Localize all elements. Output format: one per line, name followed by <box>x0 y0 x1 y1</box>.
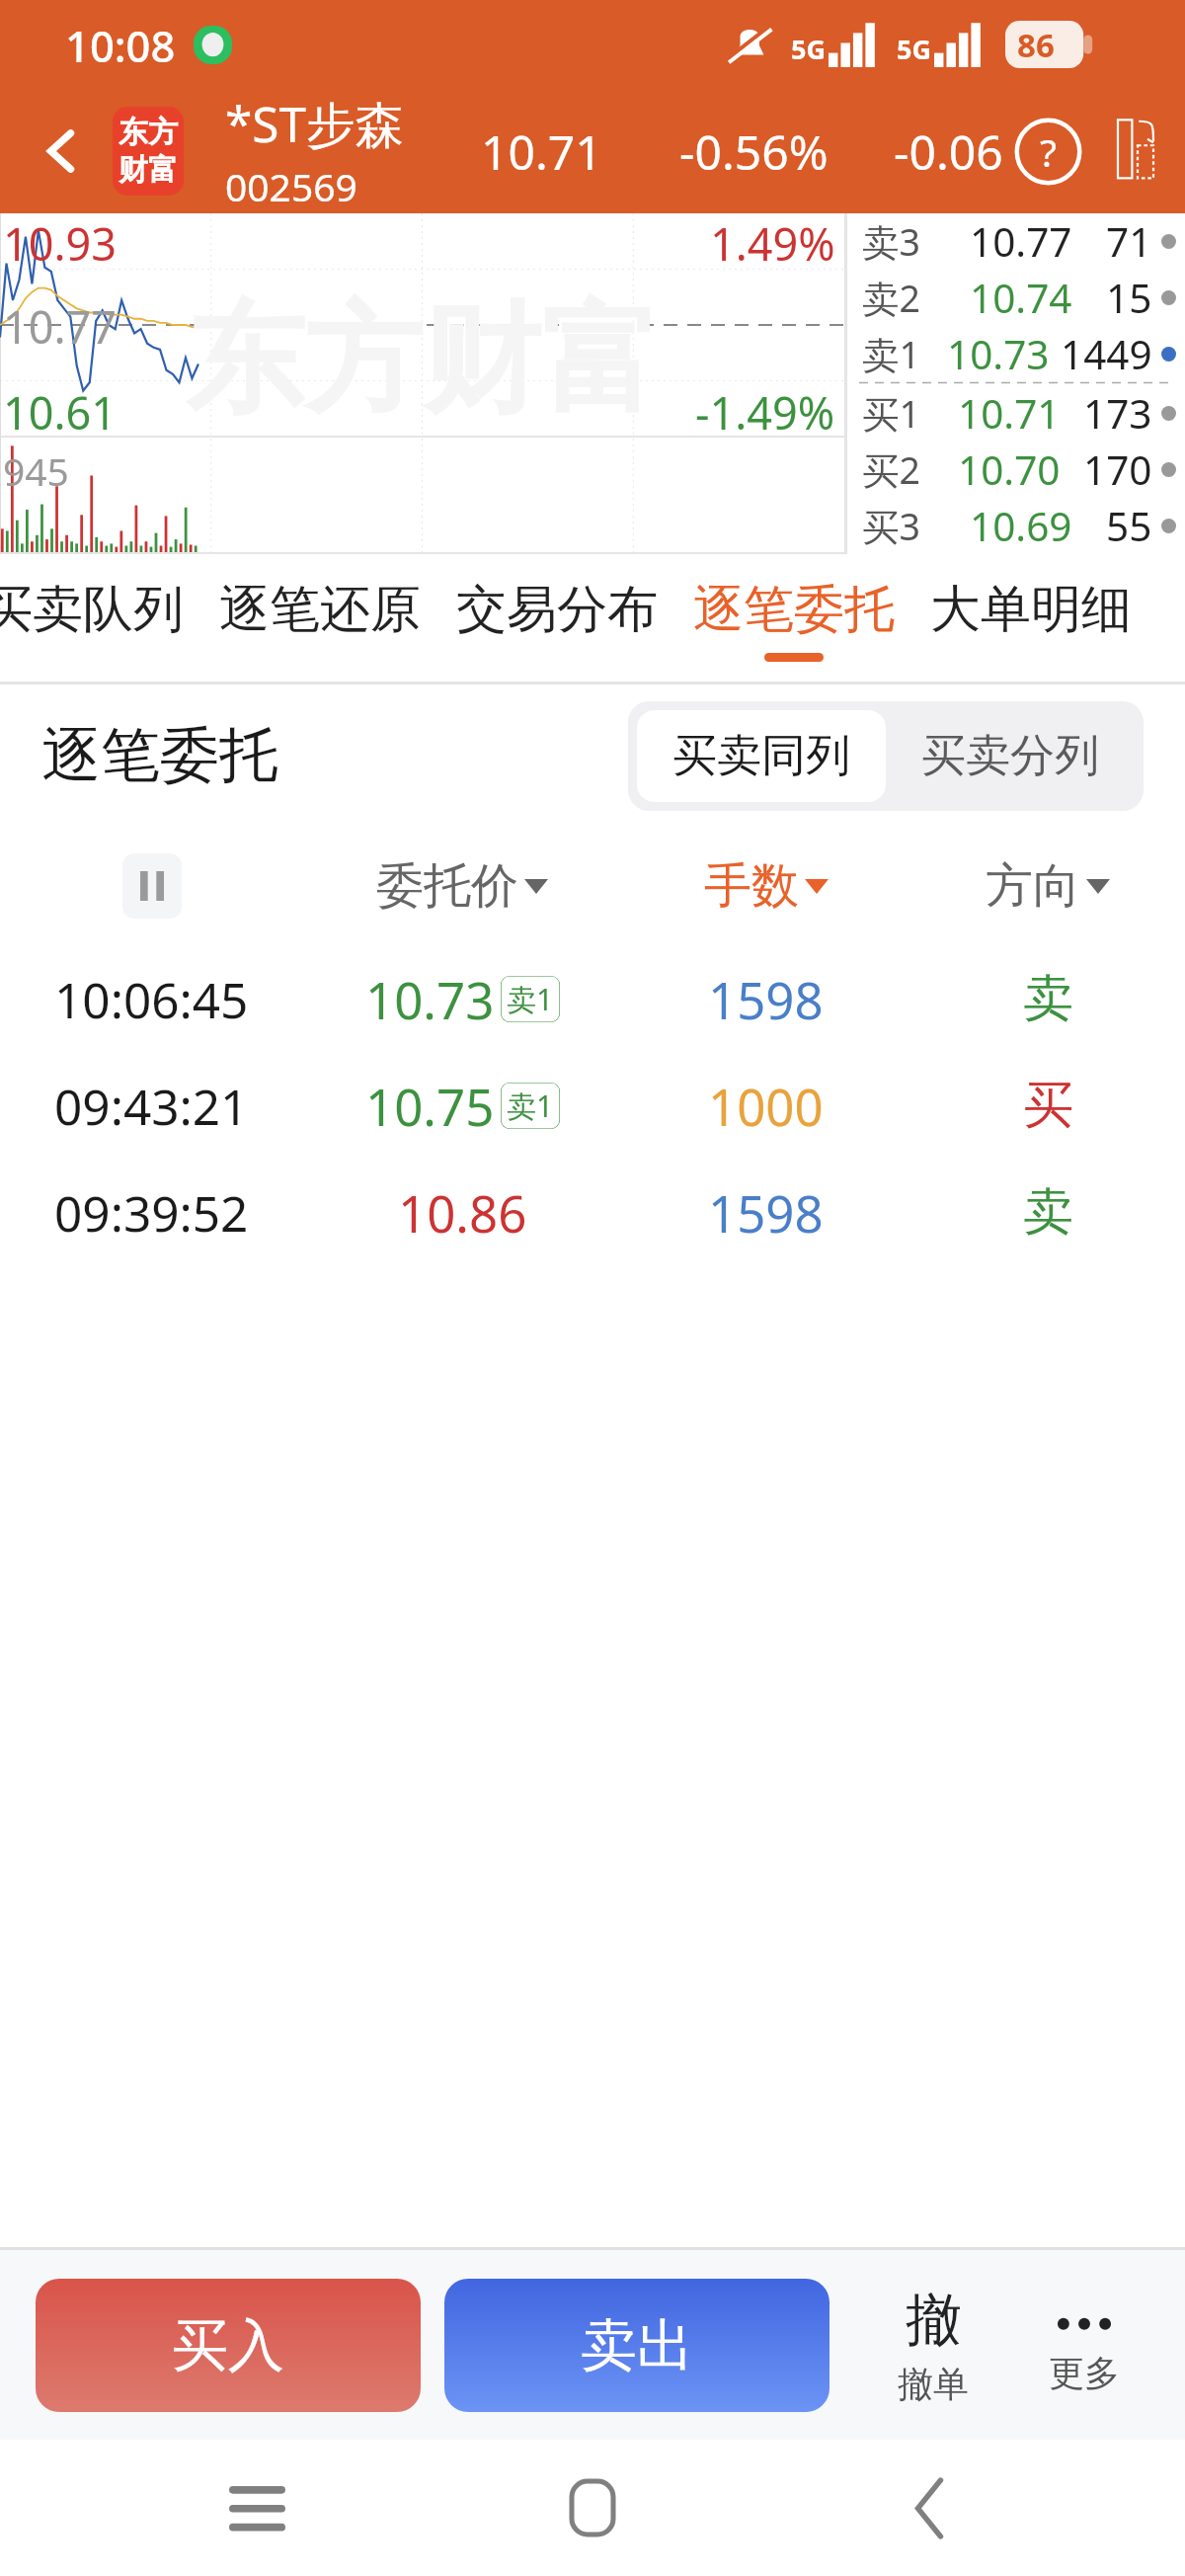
staticText: 10.75 <box>365 1072 495 1140</box>
staticText: 10:08 <box>65 16 176 74</box>
staticText: 买卖队列 <box>0 578 184 641</box>
staticText: 更多 <box>1049 2351 1120 2395</box>
button[interactable]: 逐笔委托 <box>675 554 912 684</box>
button[interactable]: 卖3 <box>847 213 1185 270</box>
button[interactable]: 卖出 <box>444 2279 829 2412</box>
staticText: 东方 <box>118 114 178 151</box>
button[interactable]: 更多 <box>1007 2250 1161 2440</box>
button[interactable]: 手数 <box>621 827 910 945</box>
staticText: 撤 <box>906 2285 962 2356</box>
staticText: 5G <box>791 31 826 67</box>
staticText: 买卖分列 <box>921 728 1099 784</box>
staticText: 86 <box>1017 23 1055 67</box>
button[interactable]: 方向 <box>910 827 1185 945</box>
staticText: 东方财富 <box>186 285 660 435</box>
staticText: 10.77 <box>970 214 1072 269</box>
button[interactable]: 买入 <box>36 2279 421 2412</box>
staticText: 卖1 <box>862 329 920 379</box>
button[interactable]: 买卖分列 <box>886 710 1135 802</box>
staticText: 1449 <box>1061 327 1152 381</box>
staticText: -1.49% <box>695 382 835 443</box>
staticText: -0.56% <box>679 120 829 184</box>
button[interactable]: 大单明细 <box>912 554 1149 684</box>
staticText: 173 <box>1083 386 1152 441</box>
button[interactable]: Back <box>12 101 113 201</box>
staticText: 10.73 <box>947 327 1050 381</box>
staticText: 10.77 <box>3 296 118 357</box>
staticText: 财富 <box>118 151 178 189</box>
staticText: 逐笔还原 <box>219 578 421 641</box>
button[interactable]: Back <box>849 2440 1009 2576</box>
staticText: 10.69 <box>970 499 1072 553</box>
button[interactable]: 09:43:21 <box>0 1052 1185 1159</box>
staticText: 002569 <box>225 160 357 212</box>
staticText: 方向 <box>986 856 1080 916</box>
button[interactable]: 买2 <box>847 442 1185 498</box>
staticText: 委托价 <box>376 856 518 916</box>
staticText: 09:43:21 <box>54 1073 249 1139</box>
staticText: 卖1 <box>507 979 554 1019</box>
button[interactable]: 逐笔还原 <box>201 554 438 684</box>
staticText: 1598 <box>708 1178 824 1247</box>
staticText: 卖1 <box>507 1086 554 1126</box>
staticText: 卖 <box>1023 1180 1073 1244</box>
staticText: 交易分布 <box>456 578 658 641</box>
button[interactable]: 交易分布 <box>438 554 675 684</box>
staticText: 逐笔委托 <box>693 578 895 641</box>
button[interactable]: Split screen <box>1116 107 1155 196</box>
staticText: 卖3 <box>862 216 920 267</box>
staticText: 撤单 <box>898 2362 969 2406</box>
staticText: 1598 <box>708 965 824 1033</box>
staticText: 买3 <box>862 501 920 551</box>
staticText: 1000 <box>708 1072 824 1140</box>
staticText: -0.06 <box>894 120 1003 184</box>
staticText: 10.93 <box>3 213 118 274</box>
staticText: 945 <box>3 444 69 497</box>
staticText: 大单明细 <box>930 578 1132 641</box>
staticText: 10.71 <box>958 386 1061 441</box>
button[interactable]: 10:06:45 <box>0 945 1185 1052</box>
staticText: 10.86 <box>398 1178 527 1247</box>
staticText: 10.61 <box>3 382 118 443</box>
staticText: 逐笔委托 <box>41 718 278 793</box>
button[interactable]: 买3 <box>847 498 1185 554</box>
button[interactable]: Home <box>513 2440 672 2576</box>
staticText: 卖 <box>1023 967 1073 1030</box>
staticText: 09:39:52 <box>54 1179 249 1246</box>
staticText: 55 <box>1106 499 1152 553</box>
staticText: 买入 <box>172 2310 284 2381</box>
button[interactable]: 买卖同列 <box>637 710 886 802</box>
button[interactable]: 委托价 <box>303 827 621 945</box>
button[interactable]: 卖2 <box>847 270 1185 326</box>
button[interactable]: 09:39:52 <box>0 1159 1185 1265</box>
staticText: 10.73 <box>365 965 495 1033</box>
staticText: 170 <box>1083 443 1152 497</box>
staticText: ? <box>1040 125 1057 178</box>
button[interactable]: Recents <box>177 2440 337 2576</box>
button[interactable]: 撤 <box>859 2250 1007 2440</box>
staticText: 10:06:45 <box>54 966 249 1032</box>
staticText: 5G <box>897 31 931 67</box>
staticText: 买2 <box>862 444 920 495</box>
button[interactable]: East Money logo <box>113 107 184 196</box>
staticText: 卖出 <box>581 2310 693 2381</box>
button[interactable]: Help <box>1003 107 1092 196</box>
button[interactable]: 买卖队列 <box>0 554 201 684</box>
button[interactable]: 买1 <box>847 385 1185 442</box>
staticText: 买 <box>1023 1074 1073 1137</box>
staticText: 10.71 <box>481 120 602 184</box>
staticText: 卖2 <box>862 273 920 323</box>
staticText: 10.74 <box>970 271 1072 325</box>
staticText: 手数 <box>704 856 799 916</box>
staticText: 71 <box>1106 214 1152 269</box>
staticText: 买1 <box>862 388 920 439</box>
staticText: 买卖同列 <box>672 728 850 784</box>
button[interactable]: 卖1 <box>847 326 1185 382</box>
staticText: 1.49% <box>710 213 835 274</box>
staticText: 10.70 <box>958 443 1061 497</box>
button[interactable]: Pause <box>122 853 182 919</box>
staticText: 15 <box>1106 271 1152 325</box>
staticText: *ST步森 <box>225 90 404 157</box>
